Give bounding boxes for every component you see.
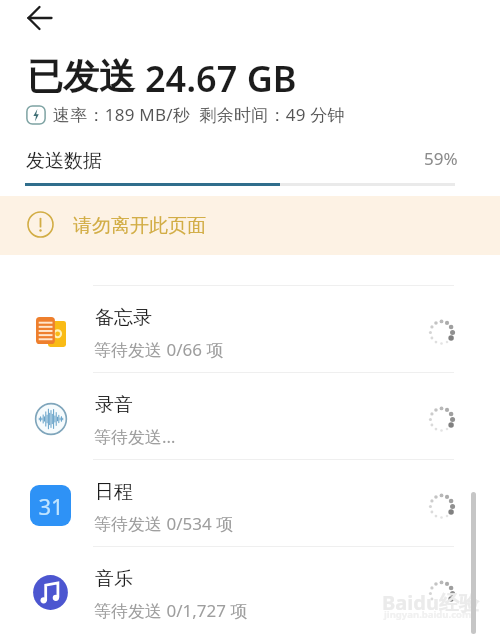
staticText: 请勿离开此页面 <box>73 214 206 238</box>
staticText: 已发送 <box>27 54 135 99</box>
staticText: 等待发送 0/66 项 <box>94 338 224 361</box>
staticText: 发送数据 <box>26 149 102 173</box>
button[interactable]: 31 <box>0 459 500 546</box>
button[interactable]: 备忘录 <box>0 285 500 372</box>
staticText: 备忘录 <box>95 306 152 330</box>
staticText: 日程 <box>95 480 133 504</box>
staticText: 等待发送 0/1,727 项 <box>94 599 248 622</box>
button[interactable]: 请勿离开此页面 <box>0 196 500 255</box>
staticText: 音乐 <box>95 567 133 591</box>
staticText: 59% <box>424 147 458 170</box>
staticText: 31 <box>38 491 64 521</box>
staticText: Baidu经验 <box>382 589 479 616</box>
staticText: 录音 <box>95 393 133 417</box>
staticText: 24.67 GB <box>145 54 297 103</box>
button[interactable]: Back <box>22 0 58 36</box>
button[interactable]: 录音 <box>0 372 500 459</box>
staticText: jingyan.baidu.com <box>384 608 472 621</box>
button[interactable]: 音乐 <box>0 546 500 633</box>
staticText: 等待发送… <box>94 425 176 448</box>
staticText: 速率：189 MB/秒 剩余时间：49 分钟 <box>53 103 345 126</box>
staticText: 等待发送 0/534 项 <box>94 512 234 535</box>
